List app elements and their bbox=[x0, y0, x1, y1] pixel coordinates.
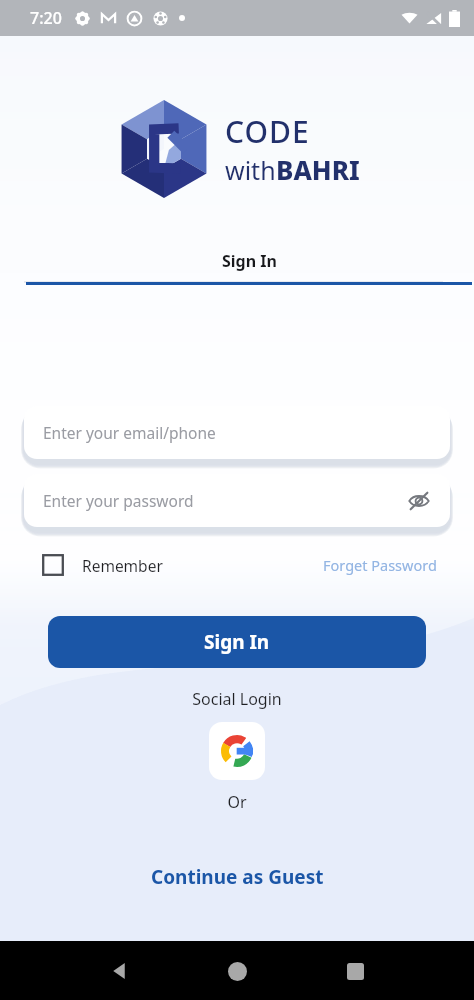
staticText: Continue as Guest bbox=[151, 864, 324, 890]
staticText: CODE bbox=[225, 111, 310, 152]
button[interactable]: Sign In bbox=[24, 250, 474, 285]
staticText: Social Login bbox=[0, 688, 474, 710]
staticText: Or bbox=[0, 791, 474, 813]
staticText: Remember bbox=[82, 555, 163, 576]
staticText: Enter your email/phone bbox=[43, 422, 216, 443]
button[interactable]: Sign in with Google bbox=[209, 722, 265, 780]
button[interactable]: Recent apps bbox=[329, 945, 381, 997]
button[interactable]: Sign In bbox=[48, 616, 426, 668]
staticText: 7:20 bbox=[30, 7, 62, 29]
button[interactable]: Enter your email/phone bbox=[24, 406, 450, 459]
staticText: with bbox=[225, 153, 276, 187]
button[interactable]: Home bbox=[211, 945, 263, 997]
button[interactable]: Enter your password bbox=[24, 474, 450, 527]
staticText: Forget Password bbox=[323, 555, 437, 575]
staticText: Sign In bbox=[222, 250, 277, 272]
staticText: Enter your password bbox=[43, 490, 194, 511]
staticText: BAHRI bbox=[276, 152, 360, 187]
button[interactable]: Back bbox=[93, 945, 145, 997]
button[interactable]: Forget Password bbox=[323, 555, 437, 575]
button[interactable]: Remember bbox=[42, 554, 163, 576]
button[interactable]: Show password bbox=[406, 488, 432, 514]
staticText: Sign In bbox=[204, 629, 270, 655]
button[interactable]: Continue as Guest bbox=[143, 856, 332, 898]
